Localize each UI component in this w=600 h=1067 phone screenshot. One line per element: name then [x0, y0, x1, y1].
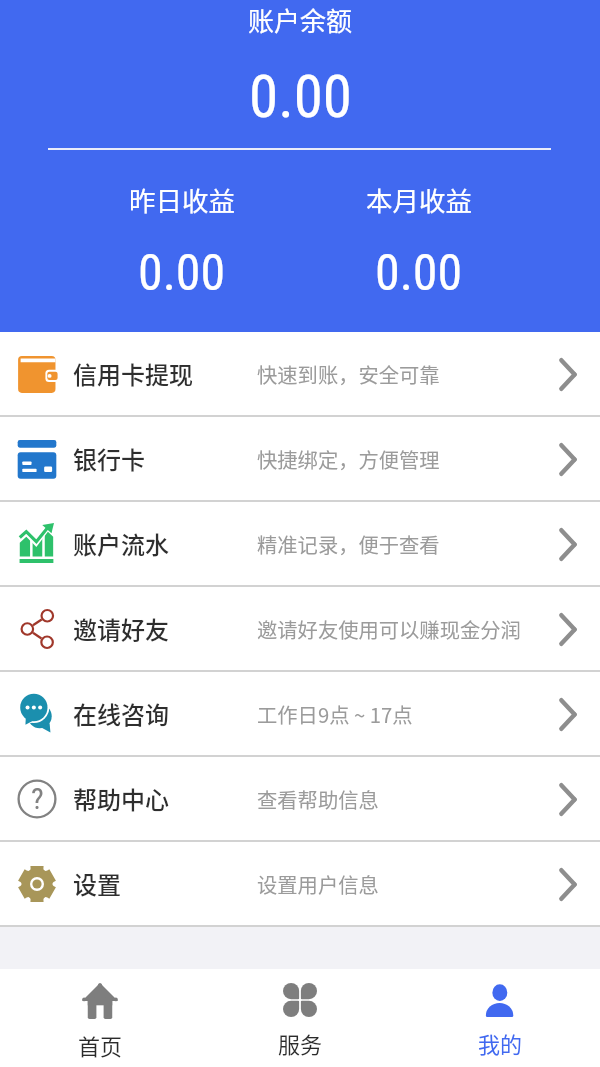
staticText: ? — [31, 781, 44, 816]
staticText: 帮助中心 — [73, 781, 169, 816]
button[interactable]: 账户流水 — [0, 502, 600, 587]
staticText: 在线咨询 — [73, 696, 169, 731]
staticText: 账户流水 — [73, 526, 169, 561]
button[interactable]: 邀请好友 — [0, 587, 600, 672]
staticText: 邀请好友使用可以赚现金分润 — [257, 614, 521, 643]
button[interactable]: Profile — [400, 969, 600, 1067]
staticText: 查看帮助信息 — [257, 784, 379, 813]
staticText: 快捷绑定，方便管理 — [257, 444, 440, 473]
staticText: 精准记录，便于查看 — [257, 529, 440, 558]
staticText: 昨日收益 — [129, 180, 235, 218]
staticText: 服务 — [278, 1027, 323, 1059]
button[interactable]: 设置 — [0, 842, 600, 927]
button[interactable]: 信用卡提现 — [0, 332, 600, 417]
staticText: 快速到账，安全可靠 — [257, 359, 440, 388]
staticText: 工作日9点 ~ 17点 — [257, 699, 413, 728]
staticText: 我的 — [478, 1027, 523, 1059]
staticText: 设置用户信息 — [257, 869, 379, 898]
staticText: 邀请好友 — [73, 611, 169, 646]
staticText: 0.00 — [375, 244, 463, 303]
button[interactable]: Services — [200, 969, 400, 1067]
button[interactable]: Home — [0, 969, 200, 1067]
staticText: 首页 — [78, 1029, 123, 1061]
staticText: 本月收益 — [366, 180, 472, 218]
staticText: 信用卡提现 — [73, 356, 193, 391]
staticText: 账户余额 — [248, 1, 353, 39]
button[interactable]: ? — [0, 757, 600, 842]
staticText: 设置 — [73, 866, 121, 901]
staticText: 0.00 — [249, 62, 352, 131]
button[interactable]: 在线咨询 — [0, 672, 600, 757]
button[interactable]: 银行卡 — [0, 417, 600, 502]
staticText: 银行卡 — [73, 441, 145, 476]
staticText: 0.00 — [138, 244, 226, 303]
